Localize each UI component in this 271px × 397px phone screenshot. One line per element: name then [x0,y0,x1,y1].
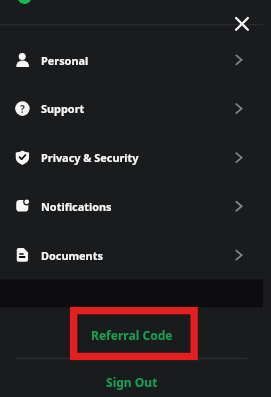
button[interactable]: Close [230,12,254,36]
staticText: Notifications [41,199,112,214]
button[interactable]: Referral Code [0,308,263,359]
staticText: Privacy & Security [41,150,139,165]
staticText: Support [41,101,85,116]
staticText: Sign Out [106,374,158,390]
staticText: Documents [41,248,103,263]
button[interactable]: Notifications [0,182,263,231]
button[interactable]: Privacy & Security [0,133,263,182]
staticText: Personal [41,53,89,68]
button[interactable]: Sign Out [0,360,263,397]
button[interactable]: Support [0,84,263,133]
button[interactable]: Documents [0,231,263,280]
staticText: Referral Code [91,327,173,343]
staticText: ? [20,102,25,116]
button[interactable]: Personal [0,36,263,85]
